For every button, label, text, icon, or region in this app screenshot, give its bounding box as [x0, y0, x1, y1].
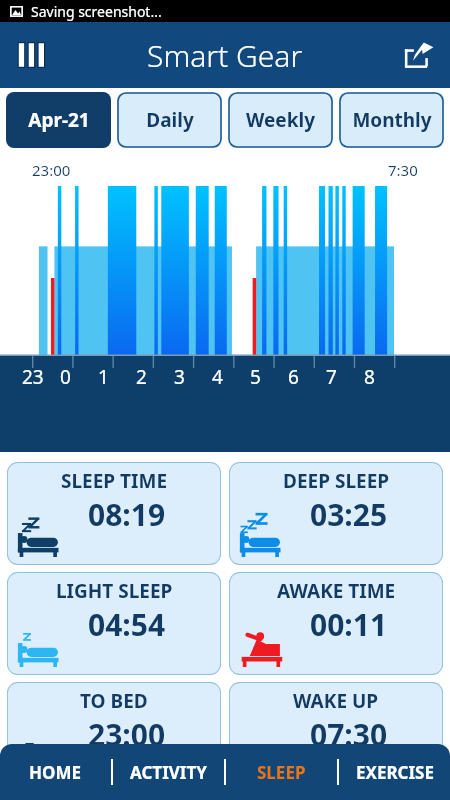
staticText: SLEEP TIME [61, 468, 168, 494]
staticText: 07:30 [310, 714, 388, 755]
button[interactable]: LIGHT SLEEP [7, 572, 221, 675]
staticText: 00:11 [310, 604, 388, 645]
staticText: ACTIVITY [130, 761, 207, 784]
button[interactable]: SLEEP [226, 744, 337, 800]
staticText: 6 [288, 364, 299, 390]
staticText: 23:00 [88, 714, 166, 755]
staticText: Weekly [246, 107, 315, 133]
button[interactable]: AWAKE TIME [229, 572, 443, 675]
staticText: 23 [22, 364, 44, 390]
button[interactable]: Daily [118, 93, 221, 147]
staticText: WAKE UP [293, 688, 379, 714]
button[interactable]: Weekly [229, 93, 332, 147]
staticText: 08:19 [88, 494, 166, 535]
staticText: Smart Gear [147, 35, 303, 76]
staticText: 23:00 [32, 160, 71, 180]
staticText: Saving screenshot... [31, 2, 162, 21]
staticText: 3 [174, 364, 185, 390]
staticText: 5 [250, 364, 261, 390]
staticText: SLEEP [257, 761, 306, 784]
staticText: Monthly [352, 107, 432, 133]
staticText: 7:30 [388, 160, 418, 180]
staticText: DEEP SLEEP [283, 468, 390, 494]
staticText: Apr-21 [28, 107, 90, 133]
staticText: 7 [326, 364, 337, 390]
button[interactable]: Menu [10, 33, 54, 77]
staticText: 2 [136, 364, 147, 390]
staticText: 04:54 [88, 604, 166, 645]
button[interactable]: EXERCISE [339, 744, 450, 800]
staticText: AWAKE TIME [277, 578, 396, 604]
button[interactable]: WAKE UP [229, 682, 443, 785]
button[interactable]: Apr-21 [6, 92, 111, 148]
staticText: 4 [212, 364, 223, 390]
button[interactable]: DEEP SLEEP [229, 462, 443, 565]
button[interactable]: SLEEP TIME [7, 462, 221, 565]
button[interactable]: ACTIVITY [113, 744, 224, 800]
staticText: 8 [364, 364, 375, 390]
button[interactable]: TO BED [7, 682, 221, 785]
staticText: LIGHT SLEEP [56, 578, 173, 604]
staticText: HOME [29, 761, 82, 784]
button[interactable]: Share [396, 32, 442, 78]
staticText: Daily [146, 107, 194, 133]
staticText: TO BED [80, 688, 148, 714]
staticText: 0 [60, 364, 71, 390]
button[interactable]: Monthly [340, 93, 443, 147]
staticText: 1 [98, 364, 109, 390]
staticText: 03:25 [310, 494, 388, 535]
button[interactable]: HOME [0, 744, 111, 800]
staticText: EXERCISE [356, 761, 434, 784]
